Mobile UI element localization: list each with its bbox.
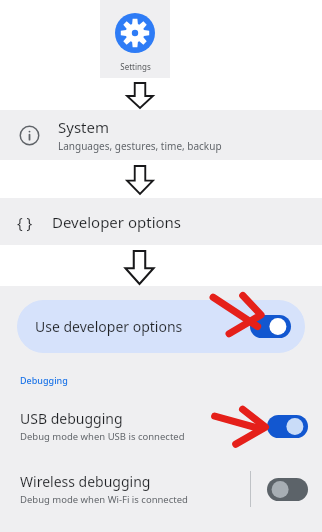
button[interactable]: Use developer options <box>17 300 305 353</box>
button[interactable]: Settings <box>100 0 170 78</box>
staticText: Settings <box>120 61 151 72</box>
staticText: Wireless debugging <box>20 472 151 491</box>
staticText: System <box>58 117 109 137</box>
button[interactable]: USB debugging <box>0 401 322 451</box>
staticText: Developer options <box>52 212 182 232</box>
button[interactable]: Wireless debugging <box>0 464 322 514</box>
staticText: Debugging <box>20 374 68 386</box>
button[interactable]: Info <box>0 110 322 160</box>
staticText: Use developer options <box>35 317 183 336</box>
button[interactable]: Toggle on <box>267 415 308 438</box>
button[interactable]: { } <box>0 198 322 245</box>
other: Info <box>19 125 40 146</box>
staticText: USB debugging <box>20 409 123 428</box>
other: Settings <box>115 13 155 53</box>
staticText: Debug mode when Wi-Fi is connected <box>20 493 188 506</box>
staticText: { } <box>17 212 33 232</box>
staticText: Debug mode when USB is connected <box>20 430 185 443</box>
staticText: Languages, gestures, time, backup <box>58 139 222 153</box>
button[interactable]: Toggle on <box>250 315 291 338</box>
button[interactable]: Toggle off <box>267 478 308 501</box>
